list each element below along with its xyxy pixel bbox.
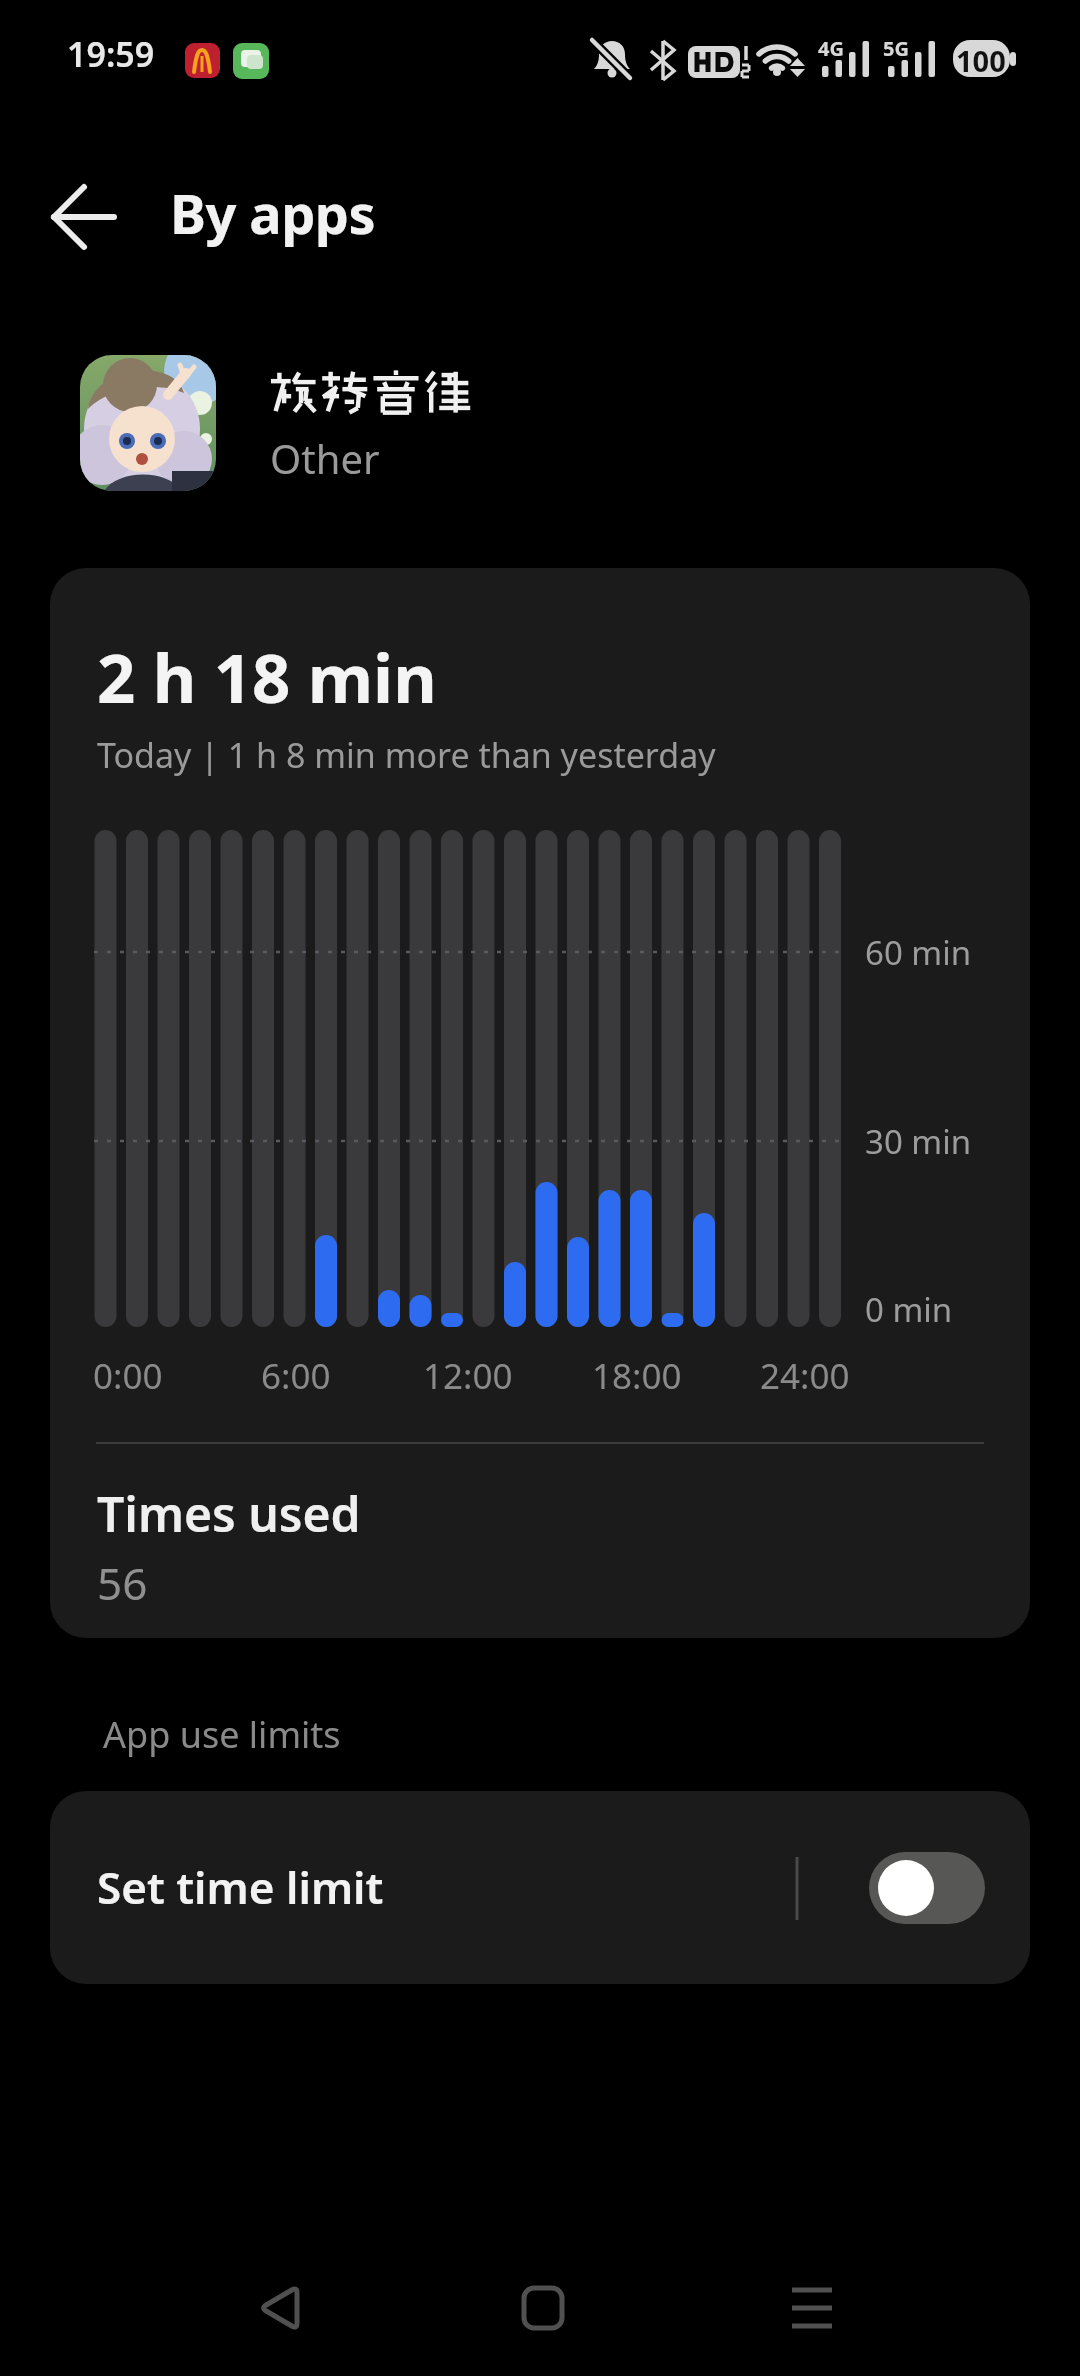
staticText: 12:00 bbox=[423, 1352, 513, 1400]
staticText: 0:00 bbox=[93, 1352, 163, 1400]
staticText: 4G bbox=[818, 35, 844, 62]
staticText: 24:00 bbox=[760, 1352, 850, 1400]
staticText: 100 bbox=[956, 41, 1006, 80]
staticText: 0 min bbox=[865, 1287, 953, 1332]
staticText: Set time limit bbox=[97, 1857, 384, 1917]
staticText: Other bbox=[270, 431, 380, 485]
staticText: 30 min bbox=[865, 1119, 972, 1164]
staticText: App use limits bbox=[103, 1710, 341, 1759]
staticText: 60 min bbox=[865, 930, 972, 975]
staticText: 6:00 bbox=[261, 1352, 331, 1400]
staticText: 56 bbox=[97, 1553, 148, 1613]
staticText: 19:59 bbox=[67, 31, 155, 77]
staticText: Today | 1 h 8 min more than yesterday bbox=[97, 732, 716, 778]
staticText: 18:00 bbox=[592, 1352, 682, 1400]
staticText: 2 h 18 min bbox=[97, 631, 437, 722]
button[interactable] bbox=[869, 1852, 985, 1924]
button[interactable]: Set time limit bbox=[50, 1791, 1030, 1984]
staticText: By apps bbox=[170, 176, 375, 250]
button[interactable]: Other bbox=[50, 340, 1030, 510]
button[interactable] bbox=[483, 2270, 603, 2346]
button[interactable] bbox=[40, 180, 136, 256]
button[interactable] bbox=[752, 2270, 872, 2346]
button[interactable] bbox=[218, 2270, 338, 2346]
staticText: 5G bbox=[883, 35, 909, 62]
staticText: Times used bbox=[97, 1481, 361, 1546]
